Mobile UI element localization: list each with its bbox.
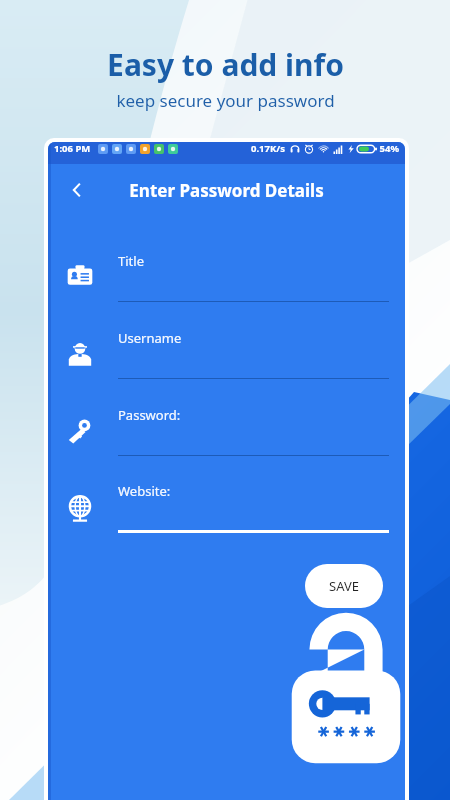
staticText: Password: xyxy=(118,406,181,424)
button[interactable]: Password: xyxy=(48,392,405,469)
staticText: Title xyxy=(118,252,144,270)
staticText: Enter Password Details xyxy=(129,179,324,202)
staticText: Website: xyxy=(118,482,171,500)
staticText: 0.17K/s xyxy=(251,142,285,155)
button[interactable]: Website: xyxy=(48,469,405,546)
staticText: Easy to add info xyxy=(107,44,344,85)
staticText: Username xyxy=(118,329,182,347)
button[interactable]: Username xyxy=(48,315,405,392)
staticText: 54% xyxy=(379,142,399,155)
staticText: keep secure your password xyxy=(116,89,335,112)
button[interactable]: SAVE xyxy=(305,564,383,608)
button[interactable]: Back xyxy=(60,173,94,207)
button[interactable]: Title xyxy=(48,238,405,315)
staticText: SAVE xyxy=(329,577,359,595)
staticText: 1:06 PM xyxy=(54,142,91,155)
